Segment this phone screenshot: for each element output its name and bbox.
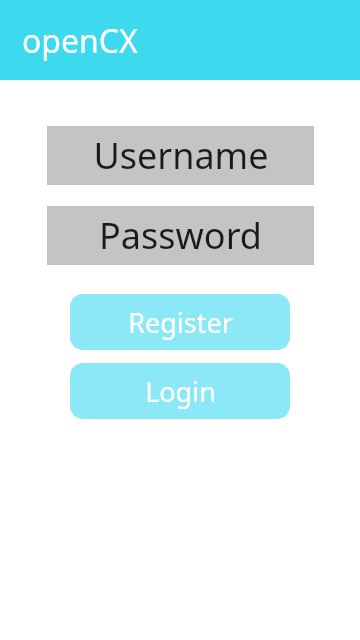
button[interactable]: Username <box>47 126 314 185</box>
staticText: Password <box>99 211 262 260</box>
staticText: Register <box>128 304 233 341</box>
button[interactable]: Login <box>70 363 290 419</box>
button[interactable]: Register <box>70 294 290 350</box>
staticText: Username <box>93 131 269 180</box>
staticText: Login <box>145 373 216 410</box>
button[interactable]: Password <box>47 206 314 265</box>
staticText: openCX <box>22 19 138 63</box>
